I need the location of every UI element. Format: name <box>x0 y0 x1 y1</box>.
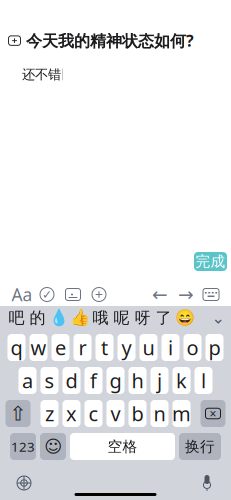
staticText: u <box>142 334 154 361</box>
button[interactable]: m <box>172 400 190 427</box>
staticText: 123 <box>11 438 35 455</box>
button[interactable]: 😄 <box>174 307 195 329</box>
button[interactable]: 👍 <box>69 307 90 329</box>
staticText: g <box>109 367 121 394</box>
button[interactable]: l <box>194 367 212 394</box>
button[interactable]: 呀 <box>132 307 153 329</box>
button[interactable]: Hide keyboard <box>199 283 223 305</box>
staticText: Aa <box>11 283 32 306</box>
staticText: 换行 <box>185 437 215 455</box>
staticText: d <box>65 367 77 394</box>
button[interactable]: Add attachment <box>86 283 112 305</box>
staticText: 的 <box>29 308 45 328</box>
staticText: p <box>208 334 220 361</box>
staticText: i <box>168 334 173 361</box>
button[interactable]: h <box>128 367 146 394</box>
staticText: 💧 <box>48 309 68 327</box>
button[interactable]: Shift <box>5 400 30 427</box>
button[interactable]: More candidates <box>209 307 227 329</box>
staticText: × <box>209 405 216 421</box>
staticText: z <box>45 400 54 427</box>
staticText: 呢 <box>113 308 129 328</box>
staticText: 😄 <box>174 309 194 327</box>
button[interactable]: t <box>95 334 113 361</box>
staticText: ← <box>152 284 168 305</box>
button[interactable]: 完成 <box>194 252 227 271</box>
button[interactable]: Insert photo <box>60 283 86 305</box>
button[interactable]: e <box>51 334 69 361</box>
button[interactable]: s <box>40 367 58 394</box>
staticText: ☺ <box>44 437 62 456</box>
staticText: s <box>44 367 54 394</box>
button[interactable]: 123 <box>10 433 36 460</box>
button[interactable]: r <box>73 334 91 361</box>
button[interactable]: u <box>139 334 157 361</box>
button[interactable]: Text format <box>10 283 34 305</box>
button[interactable]: Checklist <box>34 283 60 305</box>
staticText: e <box>55 334 66 361</box>
staticText: v <box>110 400 120 427</box>
button[interactable]: Redo <box>173 283 199 305</box>
button[interactable]: k <box>172 367 190 394</box>
staticText: k <box>176 367 187 394</box>
staticText: ✓ <box>42 288 52 301</box>
button[interactable]: d <box>62 367 80 394</box>
staticText: w <box>30 334 46 361</box>
button[interactable]: 换行 <box>179 433 221 460</box>
staticText: h <box>131 367 143 394</box>
staticText: 了 <box>155 308 171 328</box>
staticText: 呀 <box>134 308 150 328</box>
staticText: a <box>22 367 33 394</box>
staticText: j <box>157 367 162 394</box>
staticText: n <box>153 400 165 427</box>
button[interactable]: 哦 <box>90 307 111 329</box>
button[interactable]: 吧 <box>6 307 27 329</box>
staticText: o <box>186 334 198 361</box>
staticText: 👍 <box>69 309 89 327</box>
button[interactable]: b <box>128 400 146 427</box>
staticText: l <box>201 367 206 394</box>
button[interactable]: 空格 <box>70 433 175 460</box>
staticText: m <box>172 400 191 427</box>
button[interactable]: g <box>106 367 124 394</box>
staticText: f <box>90 367 97 394</box>
button[interactable]: v <box>106 400 124 427</box>
button[interactable]: a <box>18 367 36 394</box>
staticText: 吧 <box>8 308 24 328</box>
staticText: → <box>178 284 194 305</box>
button[interactable]: n <box>150 400 168 427</box>
staticText: c <box>88 400 98 427</box>
staticText: r <box>78 334 86 361</box>
button[interactable]: z <box>40 400 58 427</box>
staticText: q <box>10 334 22 361</box>
button[interactable]: i <box>161 334 179 361</box>
staticText: t <box>101 334 108 361</box>
button[interactable]: 了 <box>153 307 174 329</box>
staticText: b <box>131 400 143 427</box>
button[interactable]: j <box>150 367 168 394</box>
button[interactable]: f <box>84 367 102 394</box>
button[interactable]: x <box>62 400 80 427</box>
button[interactable]: p <box>205 334 223 361</box>
button[interactable]: Dictation <box>193 472 221 494</box>
button[interactable]: Undo <box>147 283 173 305</box>
button[interactable]: Delete <box>200 400 225 427</box>
staticText: y <box>121 334 131 361</box>
button[interactable]: c <box>84 400 102 427</box>
button[interactable]: q <box>7 334 25 361</box>
button[interactable]: 💧 <box>48 307 69 329</box>
button[interactable]: Emoji <box>40 433 66 460</box>
button[interactable]: 的 <box>27 307 48 329</box>
button[interactable]: 呢 <box>111 307 132 329</box>
staticText: 还不错 <box>22 66 61 83</box>
button[interactable]: o <box>183 334 201 361</box>
button[interactable]: y <box>117 334 135 361</box>
staticText: x <box>66 400 77 427</box>
staticText: ⌄ <box>211 309 224 327</box>
button[interactable]: w <box>29 334 47 361</box>
staticText: ⇧ <box>9 402 26 425</box>
staticText: 完成 <box>195 252 225 270</box>
staticText: 空格 <box>107 437 137 455</box>
staticText: 哦 <box>92 308 108 328</box>
button[interactable]: Next keyboard <box>10 472 38 494</box>
